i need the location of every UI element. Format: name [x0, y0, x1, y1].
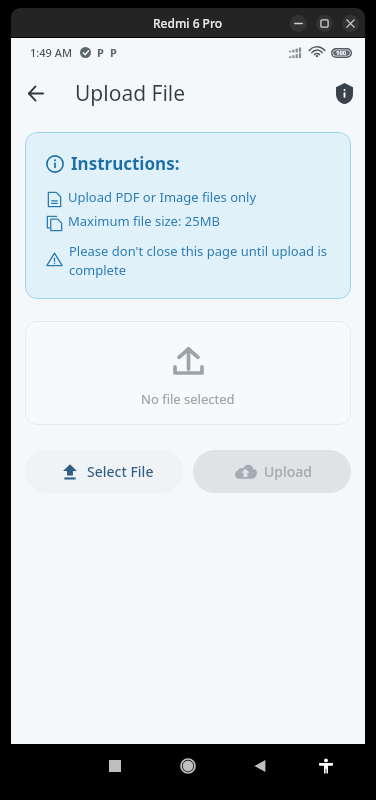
staticText: P	[97, 45, 104, 60]
staticText: Upload File	[75, 79, 186, 108]
button[interactable]: Select File	[25, 450, 183, 493]
button[interactable]: No file selected	[25, 321, 351, 425]
staticText: Maximum file size: 25MB	[68, 212, 220, 230]
staticText: No file selected	[141, 390, 235, 408]
staticText: Upload	[264, 462, 313, 481]
button[interactable]: Accessibility	[304, 744, 348, 788]
button[interactable]: Recents	[93, 744, 137, 788]
button[interactable]: Home	[166, 744, 210, 788]
button[interactable]: Close	[342, 15, 359, 32]
staticText: 100	[336, 49, 347, 57]
button[interactable]: Upload	[193, 450, 351, 493]
staticText: P	[110, 45, 117, 60]
staticText: Please don't close this page until uploa…	[69, 242, 337, 278]
button[interactable]: Minimize	[290, 15, 307, 32]
staticText: Upload PDF or Image files only	[68, 188, 257, 206]
button[interactable]: Security info	[324, 73, 364, 113]
staticText: Redmi 6 Pro	[153, 15, 223, 31]
button[interactable]: Back	[16, 73, 56, 113]
staticText: 1:49 AM	[30, 45, 73, 60]
staticText: Select File	[87, 462, 154, 481]
button[interactable]: Back	[238, 744, 282, 788]
staticText: Instructions:	[71, 152, 180, 175]
button[interactable]: Maximize	[316, 15, 333, 32]
